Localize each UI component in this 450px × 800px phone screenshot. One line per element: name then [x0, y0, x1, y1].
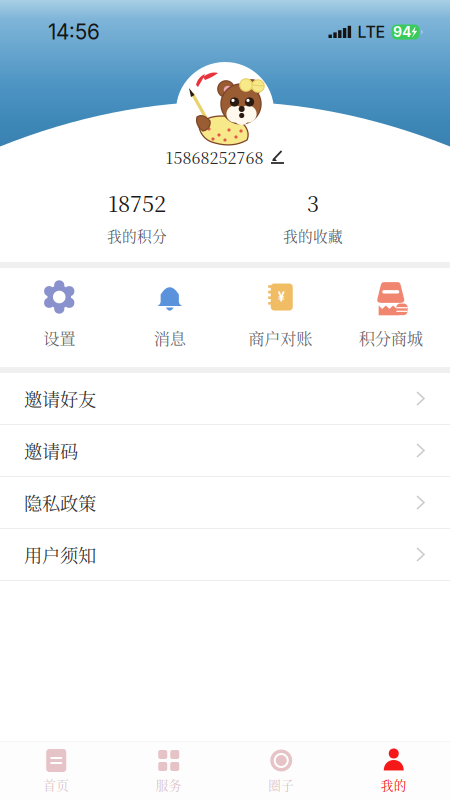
button[interactable]: ¥ — [225, 268, 335, 367]
staticText: 首页 — [43, 775, 69, 793]
staticText: 圈子 — [268, 775, 294, 793]
button[interactable]: 邀请码 — [0, 425, 450, 477]
staticText: 邀请好友 — [24, 385, 96, 412]
staticText: 14:56 — [48, 19, 100, 45]
staticText: LTE — [357, 22, 385, 42]
button[interactable]: 邀请好友 — [0, 373, 450, 425]
staticText: 积分商城 — [359, 326, 423, 349]
staticText: 我的积分 — [107, 225, 167, 246]
button[interactable]: 服务 — [112, 743, 225, 799]
staticText: 隐私政策 — [24, 489, 96, 516]
button[interactable]: 隐私政策 — [0, 477, 450, 529]
staticText: 邀请码 — [24, 437, 78, 464]
button[interactable]: 用户须知 — [0, 529, 450, 581]
button[interactable]: 18752 — [49, 180, 225, 262]
staticText: 18752 — [108, 187, 166, 218]
staticText: 用户须知 — [24, 541, 96, 568]
staticText: 我的 — [381, 775, 407, 793]
staticText: 商户对账 — [248, 326, 312, 349]
button[interactable]: 我的 — [337, 743, 450, 799]
staticText: 我的收藏 — [283, 225, 343, 246]
button[interactable]: 积分商城 — [335, 268, 446, 367]
button[interactable]: 圈子 — [225, 743, 337, 799]
button[interactable]: 3 — [225, 180, 401, 262]
staticText: 消息 — [154, 326, 186, 349]
staticText: 15868252768 — [165, 145, 263, 168]
staticText: 服务 — [156, 775, 182, 793]
button[interactable]: 首页 — [0, 743, 112, 799]
staticText: 设置 — [43, 326, 75, 349]
button[interactable]: 15868252768 — [159, 147, 290, 167]
button[interactable]: 消息 — [114, 268, 225, 367]
button[interactable]: 设置 — [4, 268, 114, 367]
staticText: 3 — [307, 187, 319, 218]
staticText: ¥ — [278, 289, 285, 305]
staticText: 94 — [393, 23, 411, 40]
